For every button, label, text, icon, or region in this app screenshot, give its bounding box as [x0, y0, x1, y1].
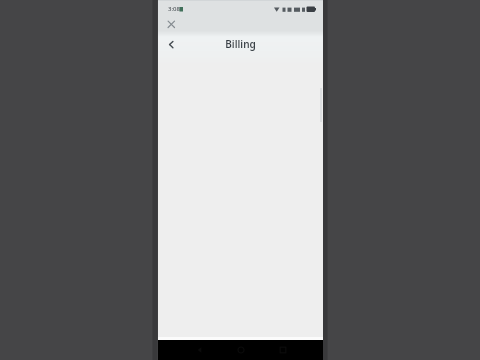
- staticText: Billing: [225, 37, 256, 51]
- button[interactable]: [162, 16, 179, 33]
- button[interactable]: [161, 34, 181, 54]
- staticText: 3:08: [168, 5, 180, 13]
